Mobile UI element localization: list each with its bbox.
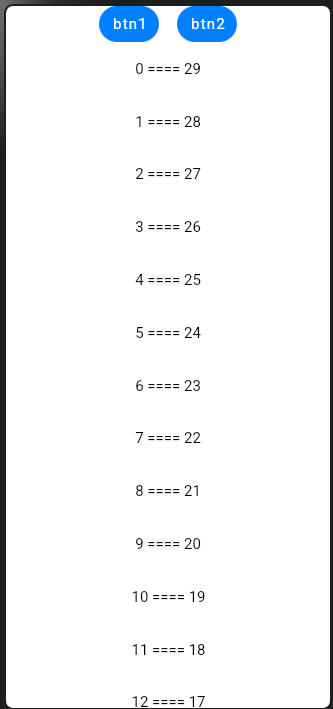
- staticText: 4 ==== 25: [135, 271, 201, 289]
- staticText: 9 ==== 20: [135, 535, 201, 553]
- staticText: 5 ==== 24: [135, 324, 201, 342]
- staticText: 12 ==== 17: [131, 693, 206, 708]
- staticText: 2 ==== 27: [135, 165, 201, 183]
- staticText: 7 ==== 22: [135, 429, 201, 447]
- staticText: 6 ==== 23: [135, 377, 201, 395]
- staticText: 1 ==== 28: [135, 113, 201, 131]
- button[interactable]: btn2: [177, 6, 237, 42]
- staticText: 8 ==== 21: [135, 482, 201, 500]
- staticText: 0 ==== 29: [135, 60, 201, 78]
- staticText: 11 ==== 18: [131, 641, 206, 659]
- button[interactable]: btn1: [99, 6, 159, 42]
- staticText: btn1: [113, 15, 149, 33]
- staticText: 3 ==== 26: [135, 218, 201, 236]
- staticText: btn2: [191, 15, 227, 33]
- staticText: 10 ==== 19: [131, 588, 206, 606]
